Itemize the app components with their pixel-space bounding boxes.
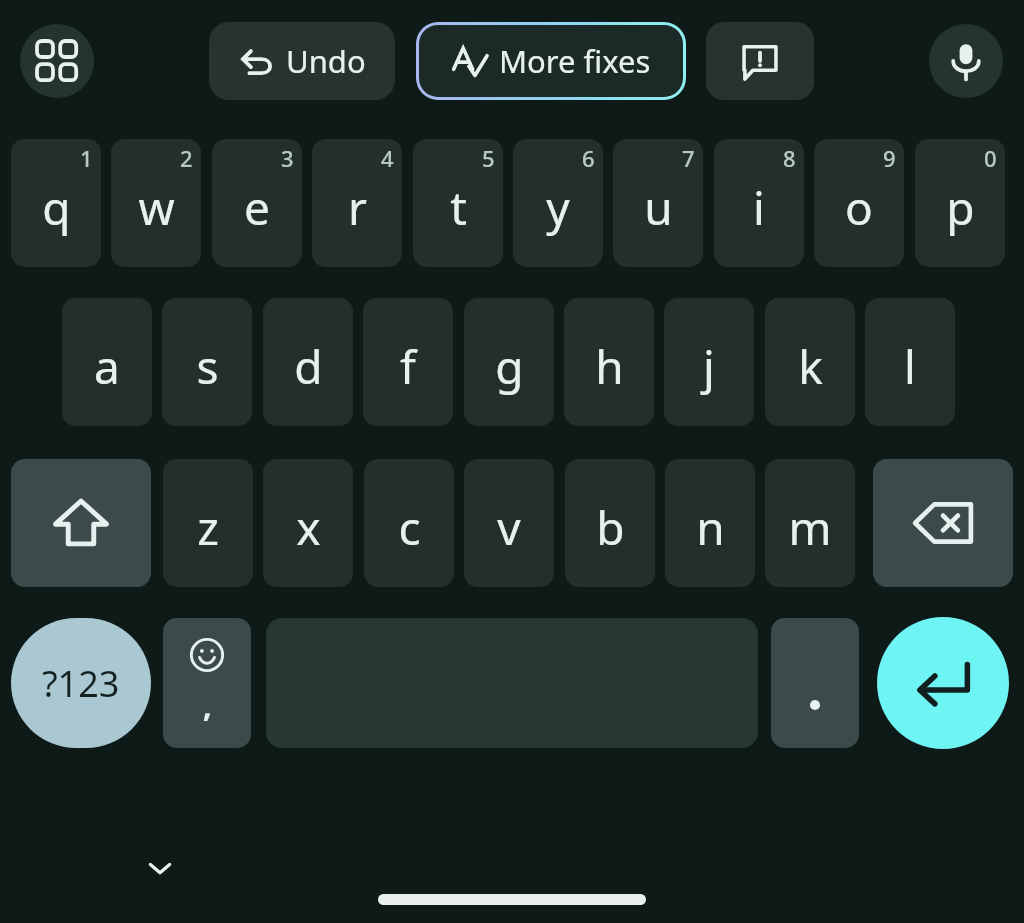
button[interactable]: m bbox=[765, 459, 855, 587]
staticText: 6 bbox=[582, 143, 595, 173]
staticText: More fixes bbox=[499, 40, 651, 82]
staticText: y bbox=[546, 176, 570, 239]
button[interactable]: k bbox=[765, 298, 855, 426]
button[interactable]: f bbox=[363, 298, 453, 426]
button[interactable]: b bbox=[565, 459, 655, 587]
staticText: 8 bbox=[783, 143, 796, 173]
button[interactable]: j bbox=[664, 298, 754, 426]
button[interactable]: q bbox=[11, 139, 101, 267]
button[interactable]: y bbox=[513, 139, 603, 267]
button[interactable]: Period bbox=[771, 618, 859, 748]
staticText: i bbox=[753, 176, 765, 239]
button[interactable]: z bbox=[163, 459, 253, 587]
staticText: z bbox=[197, 496, 219, 559]
button[interactable]: o bbox=[814, 139, 904, 267]
button[interactable]: w bbox=[111, 139, 201, 267]
staticText: l bbox=[904, 335, 916, 398]
button[interactable]: e bbox=[212, 139, 302, 267]
button[interactable]: d bbox=[263, 298, 353, 426]
staticText: 7 bbox=[682, 143, 695, 173]
button[interactable]: ?123 bbox=[11, 618, 151, 748]
staticText: f bbox=[400, 335, 416, 398]
button[interactable]: v bbox=[464, 459, 554, 587]
staticText: u bbox=[644, 176, 673, 239]
staticText: h bbox=[595, 335, 624, 398]
button[interactable]: Feedback bbox=[706, 22, 814, 100]
button[interactable]: Voice input bbox=[929, 24, 1003, 98]
staticText: ?123 bbox=[42, 659, 120, 708]
staticText: 3 bbox=[281, 143, 294, 173]
staticText: w bbox=[138, 176, 175, 239]
staticText: g bbox=[495, 335, 524, 398]
button[interactable]: a bbox=[62, 298, 152, 426]
button[interactable]: g bbox=[464, 298, 554, 426]
staticText: p bbox=[946, 176, 975, 239]
staticText: j bbox=[703, 335, 715, 398]
staticText: q bbox=[42, 176, 71, 239]
staticText: Undo bbox=[286, 40, 366, 82]
button[interactable]: c bbox=[364, 459, 454, 587]
button[interactable]: Undo bbox=[209, 22, 395, 100]
staticText: v bbox=[497, 496, 521, 559]
staticText: k bbox=[798, 335, 823, 398]
staticText: d bbox=[294, 335, 323, 398]
button[interactable]: More fixes bbox=[419, 25, 683, 97]
button[interactable]: i bbox=[714, 139, 804, 267]
button[interactable]: t bbox=[413, 139, 503, 267]
button[interactable]: x bbox=[263, 459, 353, 587]
button[interactable]: Backspace bbox=[873, 459, 1013, 587]
staticText: o bbox=[845, 176, 873, 239]
button[interactable]: s bbox=[162, 298, 252, 426]
staticText: , bbox=[203, 685, 212, 726]
staticText: t bbox=[450, 176, 467, 239]
staticText: a bbox=[94, 335, 120, 398]
button[interactable]: l bbox=[865, 298, 955, 426]
button[interactable]: Emoji and comma bbox=[163, 618, 251, 748]
button[interactable]: Toolbar bbox=[20, 24, 94, 98]
button[interactable]: Enter bbox=[877, 617, 1009, 749]
button[interactable]: p bbox=[915, 139, 1005, 267]
staticText: b bbox=[596, 496, 625, 559]
staticText: m bbox=[788, 496, 832, 559]
staticText: 4 bbox=[381, 143, 394, 173]
staticText: 0 bbox=[984, 143, 997, 173]
button[interactable]: r bbox=[312, 139, 402, 267]
staticText: r bbox=[348, 176, 367, 239]
staticText: x bbox=[296, 496, 321, 559]
button[interactable]: Hide keyboard bbox=[126, 834, 194, 902]
staticText: e bbox=[244, 176, 270, 239]
staticText: 1 bbox=[80, 143, 93, 173]
staticText: s bbox=[196, 335, 219, 398]
staticText: 5 bbox=[482, 143, 495, 173]
staticText: n bbox=[696, 496, 725, 559]
button[interactable]: n bbox=[665, 459, 755, 587]
staticText: c bbox=[398, 496, 421, 559]
button[interactable]: u bbox=[613, 139, 703, 267]
button[interactable]: Shift bbox=[11, 459, 151, 587]
button[interactable]: h bbox=[564, 298, 654, 426]
staticText: 2 bbox=[180, 143, 193, 173]
staticText: 9 bbox=[883, 143, 896, 173]
